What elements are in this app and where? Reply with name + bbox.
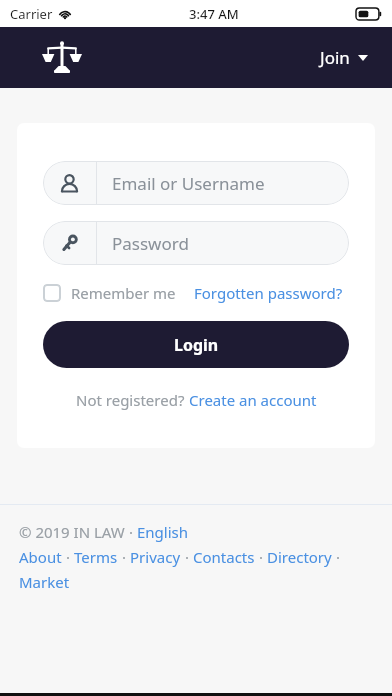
staticText: · — [118, 547, 130, 567]
staticText: About — [19, 547, 62, 567]
staticText: Carrier — [10, 5, 53, 23]
staticText: Login — [174, 334, 219, 356]
staticText: · — [255, 547, 267, 567]
button[interactable]: Forgotten password? — [194, 283, 343, 303]
staticText: · — [129, 522, 137, 542]
button[interactable]: English — [137, 522, 189, 542]
staticText: Contacts — [193, 547, 255, 567]
staticText: Remember me — [71, 283, 176, 303]
staticText: 3:47 AM — [189, 5, 239, 23]
button[interactable]: IN LAW home — [40, 36, 84, 80]
button[interactable]: Create an account — [189, 390, 317, 410]
button[interactable]: Email or Username — [43, 161, 349, 205]
button[interactable]: Directory — [267, 547, 332, 567]
staticText: Privacy — [130, 547, 181, 567]
staticText: · — [62, 547, 74, 567]
staticText: · — [181, 547, 193, 567]
button[interactable]: Login — [43, 321, 349, 368]
staticText: Forgotten password? — [194, 283, 343, 303]
staticText: · — [332, 547, 344, 567]
staticText: © 2019 IN LAW — [19, 522, 129, 542]
button[interactable]: Password — [43, 221, 349, 265]
button[interactable]: Join — [314, 40, 374, 75]
staticText: Create an account — [189, 390, 317, 410]
button[interactable]: Contacts — [193, 547, 255, 567]
staticText: English — [137, 522, 189, 542]
staticText: Market — [19, 572, 70, 592]
staticText: Directory — [267, 547, 332, 567]
staticText: Join — [320, 46, 350, 69]
button[interactable]: Privacy — [130, 547, 181, 567]
button[interactable]: Market — [19, 572, 70, 592]
button[interactable]: Terms — [74, 547, 118, 567]
button[interactable]: Remember me — [43, 283, 176, 303]
staticText: Not registered? — [76, 390, 189, 410]
staticText: Terms — [74, 547, 118, 567]
staticText: Email or Username — [112, 172, 265, 195]
staticText: Password — [112, 232, 189, 255]
button[interactable]: About — [19, 547, 62, 567]
